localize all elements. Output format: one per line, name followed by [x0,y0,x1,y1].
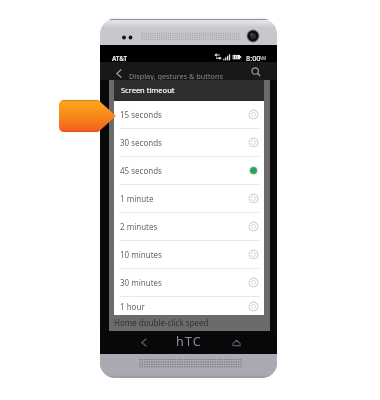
staticText: 2 minutes [120,221,259,232]
button[interactable]: 1 minute [114,185,264,212]
button[interactable]: Home [228,331,244,354]
button[interactable]: Back [113,66,125,80]
button[interactable]: 30 minutes [114,269,264,296]
staticText: 45 seconds [120,165,259,176]
staticText: AM [259,55,267,61]
staticText: 15 seconds [120,109,259,120]
button[interactable]: 45 seconds [114,157,264,184]
staticText: AT&T [112,54,128,62]
staticText: 8:00 [246,53,261,63]
staticText: 10 minutes [120,249,259,260]
staticText: 30 seconds [120,137,259,148]
staticText: hTC [176,333,202,350]
button[interactable]: 30 seconds [114,129,264,156]
staticText: 1 minute [120,193,259,204]
staticText: 30 minutes [120,277,259,288]
button[interactable]: Search [249,65,263,80]
button[interactable]: Back [136,331,152,354]
staticText: Home double-click speed [114,317,209,328]
button[interactable]: 1 hour [114,297,264,315]
staticText: 1 hour [120,301,259,312]
button[interactable]: 2 minutes [114,213,264,240]
button[interactable]: 15 seconds [114,101,264,128]
button[interactable]: 10 minutes [114,241,264,268]
staticText: Screen timeout [121,85,175,95]
staticText: Display, gestures & buttons [129,71,223,81]
